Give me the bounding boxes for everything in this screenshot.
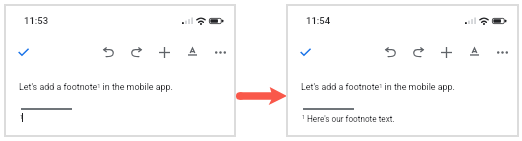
button[interactable]: More options <box>488 40 516 64</box>
staticText: 11:53 <box>24 15 49 26</box>
button[interactable]: Text formatting <box>460 40 488 64</box>
staticText: 11:54 <box>306 15 331 26</box>
staticText: Let's add a footnote1 in the mobile app. <box>301 82 455 92</box>
button[interactable]: Done <box>11 40 35 64</box>
button[interactable]: Redo <box>122 40 150 64</box>
button[interactable]: More options <box>206 40 234 64</box>
button[interactable]: Insert <box>150 40 178 64</box>
button[interactable]: Insert <box>432 40 460 64</box>
button[interactable]: Undo <box>376 40 404 64</box>
staticText: 1 <box>20 114 23 120</box>
staticText: Let's add a footnote1 in the mobile app. <box>19 82 173 92</box>
button[interactable]: Undo <box>94 40 122 64</box>
button[interactable]: Text formatting <box>178 40 206 64</box>
button[interactable]: Redo <box>404 40 432 64</box>
button[interactable]: Done <box>293 40 317 64</box>
staticText: 1 Here's our footnote text. <box>302 114 395 124</box>
